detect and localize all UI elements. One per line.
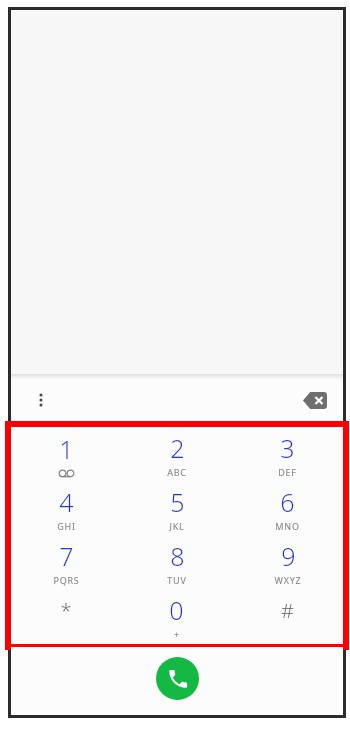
button[interactable]: 1: [11, 427, 121, 481]
button[interactable]: 5: [121, 481, 232, 535]
button[interactable]: 0: [121, 589, 232, 643]
button[interactable]: 7: [11, 535, 121, 589]
button[interactable]: 9: [232, 535, 343, 589]
staticText: 7: [59, 539, 74, 573]
staticText: 1: [59, 432, 74, 466]
staticText: *: [60, 597, 72, 624]
button[interactable]: Call: [156, 657, 199, 700]
button[interactable]: #: [232, 589, 343, 643]
staticText: JKL: [169, 520, 185, 532]
staticText: TUV: [167, 574, 187, 586]
staticText: 0: [169, 593, 184, 627]
staticText: 9: [281, 539, 296, 573]
staticText: +: [174, 628, 180, 640]
staticText: 4: [59, 485, 74, 519]
staticText: WXYZ: [274, 574, 302, 586]
button[interactable]: 4: [11, 481, 121, 535]
button[interactable]: 3: [232, 427, 343, 481]
button[interactable]: 6: [232, 481, 343, 535]
button[interactable]: 8: [121, 535, 232, 589]
button[interactable]: More options: [23, 382, 59, 418]
staticText: GHI: [57, 520, 76, 532]
button[interactable]: *: [11, 589, 121, 643]
staticText: 2: [170, 431, 185, 465]
staticText: #: [281, 597, 294, 624]
staticText: 5: [170, 485, 185, 519]
staticText: ABC: [167, 466, 187, 478]
staticText: DEF: [278, 466, 297, 478]
button[interactable]: 2: [121, 427, 232, 481]
staticText: PQRS: [53, 574, 80, 586]
staticText: MNO: [275, 520, 300, 532]
staticText: 8: [170, 539, 185, 573]
button[interactable]: Backspace: [297, 382, 333, 418]
staticText: 3: [280, 431, 295, 465]
staticText: 6: [280, 485, 295, 519]
